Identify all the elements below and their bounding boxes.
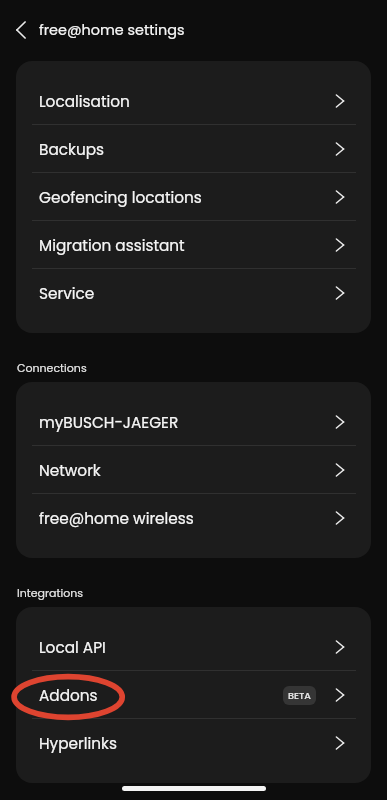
button[interactable]: Local API: [16, 623, 371, 671]
button[interactable]: free@home wireless: [16, 494, 371, 542]
button[interactable]: Migration assistant: [16, 221, 371, 269]
staticText: Backups: [39, 139, 104, 160]
staticText: free@home wireless: [39, 508, 194, 529]
button[interactable]: Network: [16, 446, 371, 494]
button[interactable]: myBUSCH-JAEGER: [16, 398, 371, 446]
staticText: Network: [39, 460, 101, 481]
staticText: Localisation: [39, 91, 130, 112]
staticText: Connections: [17, 360, 87, 375]
staticText: BETA: [288, 689, 311, 702]
staticText: Local API: [39, 637, 106, 658]
staticText: Migration assistant: [39, 235, 185, 256]
button[interactable]: Back: [4, 13, 37, 46]
staticText: Hyperlinks: [39, 733, 117, 754]
button[interactable]: Addons: [16, 671, 371, 719]
staticText: Service: [39, 283, 95, 304]
staticText: Integrations: [17, 585, 84, 600]
button[interactable]: Hyperlinks: [16, 719, 371, 767]
staticText: Geofencing locations: [39, 187, 202, 208]
staticText: Addons: [39, 685, 98, 706]
staticText: free@home settings: [39, 20, 185, 40]
button[interactable]: Backups: [16, 125, 371, 173]
staticText: myBUSCH-JAEGER: [39, 412, 179, 433]
button[interactable]: Localisation: [16, 77, 371, 125]
button[interactable]: Service: [16, 269, 371, 317]
button[interactable]: Geofencing locations: [16, 173, 371, 221]
